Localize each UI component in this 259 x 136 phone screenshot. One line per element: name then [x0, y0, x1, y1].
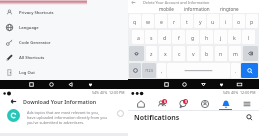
button[interactable]: u	[207, 14, 219, 28]
button[interactable]: Change keyboard	[237, 82, 242, 87]
staticText: Privacy Shortcuts	[19, 10, 54, 16]
staticText: m	[233, 50, 238, 57]
button[interactable]: Assistant	[88, 82, 93, 87]
staticText: c	[178, 50, 181, 57]
staticText: have uploaded information directly from …	[27, 115, 114, 120]
staticText: h	[205, 34, 209, 41]
button[interactable]: Notifications	[217, 98, 234, 110]
button[interactable]: Home	[182, 82, 187, 87]
staticText: g	[191, 34, 195, 41]
button[interactable]: Code Generator	[0, 35, 128, 50]
button[interactable]: w	[142, 14, 154, 28]
staticText: Notifications	[134, 113, 180, 123]
button[interactable]	[243, 46, 258, 61]
staticText: k	[233, 34, 236, 41]
button[interactable]: information	[184, 6, 210, 12]
button[interactable]: f	[172, 30, 185, 44]
button[interactable]: Privacy Shortcuts	[0, 5, 128, 20]
staticText: 6	[164, 100, 166, 104]
button[interactable]: s	[145, 30, 157, 44]
staticText: b	[205, 50, 209, 57]
button[interactable]: j	[214, 30, 227, 44]
staticText: a	[137, 34, 140, 41]
button[interactable]: Messages	[174, 98, 191, 110]
button[interactable]: .	[231, 63, 240, 78]
staticText: y	[199, 18, 202, 25]
button[interactable]: h	[200, 30, 213, 44]
button[interactable]: g	[186, 30, 199, 44]
button[interactable]: Back	[10, 98, 17, 105]
staticText: w	[146, 18, 151, 25]
staticText: .	[235, 67, 237, 74]
staticText: Log Out	[19, 70, 35, 76]
staticText: Code Generator	[19, 40, 51, 46]
staticText: f	[178, 34, 180, 41]
button[interactable]: z	[146, 46, 157, 61]
button[interactable]: b	[201, 46, 213, 61]
button[interactable]: Language	[0, 20, 128, 35]
button[interactable]: t	[181, 14, 193, 28]
button[interactable]: k	[228, 30, 241, 44]
button[interactable]: d	[158, 30, 171, 44]
staticText: 54% 40% 12:00 PM	[92, 90, 125, 95]
button[interactable]: c	[173, 46, 185, 61]
button[interactable]	[129, 46, 144, 61]
staticText: l	[248, 34, 250, 41]
staticText: 9	[185, 100, 187, 104]
button[interactable]	[129, 63, 141, 78]
staticText: e	[160, 18, 163, 25]
button[interactable]: Friends	[153, 98, 170, 110]
staticText: r	[173, 18, 176, 25]
button[interactable]: Recents	[164, 82, 169, 87]
button[interactable]: y	[194, 14, 206, 28]
button[interactable]: a	[132, 30, 144, 44]
button[interactable]: Search	[241, 63, 258, 78]
button[interactable]: o	[233, 14, 245, 28]
staticText: o	[237, 18, 241, 25]
button[interactable]: mobile	[159, 6, 174, 12]
button[interactable]: l	[242, 30, 255, 44]
staticText: 54% 40% 12:00 PM	[223, 90, 256, 95]
button[interactable]: ringtone	[220, 6, 239, 12]
staticText: d	[163, 34, 167, 41]
button[interactable]: Menu	[238, 98, 255, 110]
button[interactable]: q	[129, 14, 141, 28]
button[interactable]: Home	[49, 82, 54, 87]
button[interactable]: x	[159, 46, 171, 61]
button[interactable]	[167, 63, 230, 78]
staticText: x	[164, 50, 167, 57]
button[interactable]: r	[168, 14, 180, 28]
button[interactable]: Back	[68, 82, 73, 87]
button[interactable]: Home	[132, 98, 149, 110]
button[interactable]: Assistant	[219, 82, 224, 87]
button[interactable]: ?123	[142, 63, 156, 78]
button[interactable]: Recents	[29, 82, 34, 87]
staticText: v	[192, 50, 195, 57]
staticText: Ads topics that are most relevant to you…	[27, 110, 114, 115]
staticText: Delete Your Account and Information	[143, 0, 210, 5]
staticText: n	[219, 50, 223, 57]
staticText: j	[220, 34, 222, 41]
staticText: All Shortcuts	[19, 55, 45, 61]
button[interactable]: n	[215, 46, 227, 61]
staticText: q	[133, 18, 137, 25]
button[interactable]: Select	[117, 110, 124, 117]
staticText: Language	[19, 25, 39, 31]
button[interactable]: Search	[246, 114, 253, 121]
button[interactable]: Log Out	[0, 65, 128, 80]
button[interactable]: p	[246, 14, 258, 28]
button[interactable]: Profile	[196, 98, 213, 110]
button[interactable]: Hide keyboard	[201, 82, 206, 87]
staticText: ?123	[145, 68, 153, 73]
staticText: i	[225, 18, 227, 25]
button[interactable]: e	[155, 14, 167, 28]
staticText: z	[150, 50, 153, 57]
button[interactable]: ,	[157, 63, 166, 78]
button[interactable]: All Shortcuts	[0, 50, 128, 65]
staticText: ,	[161, 67, 163, 74]
button[interactable]: i	[220, 14, 232, 28]
staticText: you've submitted to advertisers.	[27, 120, 85, 125]
staticText: u	[211, 18, 215, 25]
button[interactable]: m	[229, 46, 241, 61]
button[interactable]: v	[187, 46, 199, 61]
